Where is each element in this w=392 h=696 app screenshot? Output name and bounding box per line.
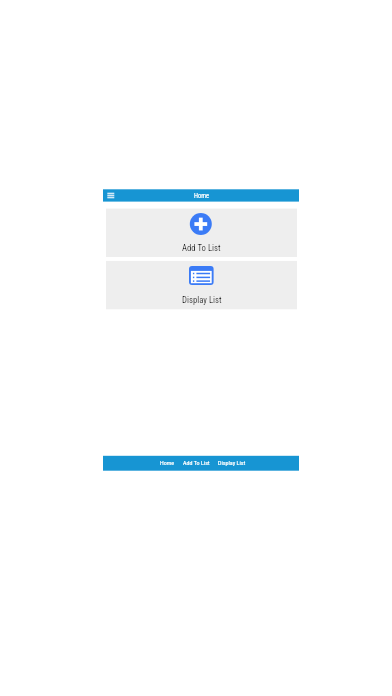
button[interactable]: Display List bbox=[218, 455, 246, 470]
button[interactable]: Open navigation menu bbox=[103, 189, 118, 201]
staticText: Add To List bbox=[182, 243, 221, 253]
staticText: Home bbox=[160, 459, 175, 466]
button[interactable]: Display List bbox=[106, 261, 297, 309]
staticText: Add To List bbox=[183, 459, 210, 466]
button[interactable]: Home bbox=[160, 455, 175, 470]
button[interactable]: Add To List bbox=[183, 455, 210, 470]
button[interactable]: Add To List bbox=[106, 209, 297, 257]
staticText: Display List bbox=[218, 459, 246, 466]
staticText: Display List bbox=[182, 295, 222, 305]
staticText: Home bbox=[194, 192, 209, 200]
